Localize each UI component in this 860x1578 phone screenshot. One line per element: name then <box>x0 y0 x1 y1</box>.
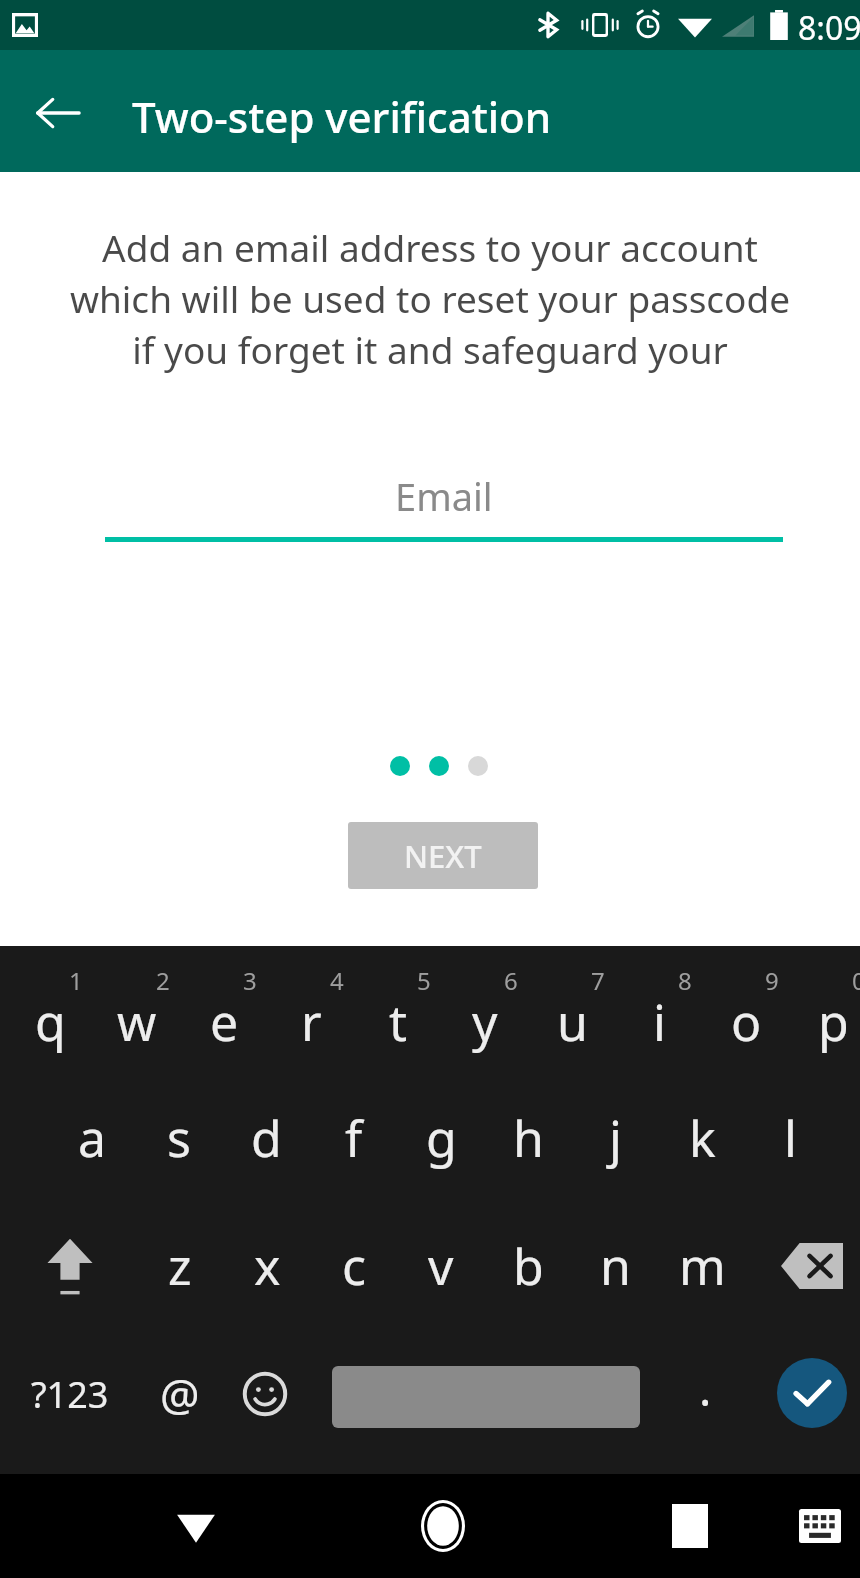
staticText: @ <box>160 1364 200 1424</box>
button[interactable]: NEXT <box>348 822 538 889</box>
button[interactable]: Backspace <box>764 1202 860 1330</box>
button[interactable]: j <box>572 1074 658 1202</box>
staticText: y <box>472 988 498 1056</box>
staticText: f <box>345 1104 363 1172</box>
staticText: q <box>35 988 66 1056</box>
button[interactable]: p <box>790 946 860 1074</box>
button[interactable]: k <box>659 1074 745 1202</box>
button[interactable]: Home <box>393 1490 493 1562</box>
staticText: 8 <box>678 964 692 997</box>
button[interactable]: i <box>616 946 702 1074</box>
button[interactable]: x <box>224 1202 310 1330</box>
button[interactable]: d <box>223 1074 309 1202</box>
button[interactable]: Back <box>22 82 102 144</box>
staticText: p <box>818 988 849 1056</box>
button[interactable]: g <box>398 1074 484 1202</box>
button[interactable]: Emoji <box>222 1330 308 1458</box>
staticText: h <box>513 1104 544 1172</box>
staticText: x <box>254 1232 281 1300</box>
staticText: 0 <box>852 964 860 997</box>
staticText: v <box>428 1232 454 1300</box>
staticText: d <box>251 1104 282 1172</box>
staticText: ?123 <box>31 1370 109 1419</box>
button[interactable]: l <box>747 1074 833 1202</box>
button[interactable]: w <box>94 946 180 1074</box>
button[interactable]: Recent apps <box>640 1490 740 1562</box>
staticText: a <box>78 1104 107 1172</box>
button[interactable]: y <box>442 946 528 1074</box>
staticText: Email <box>395 470 493 522</box>
staticText: u <box>557 988 588 1056</box>
staticText: b <box>513 1232 544 1300</box>
button[interactable]: . <box>662 1330 748 1458</box>
button[interactable]: Enter <box>777 1358 847 1428</box>
button[interactable]: Space <box>332 1366 640 1428</box>
button[interactable]: a <box>49 1074 135 1202</box>
button[interactable]: t <box>355 946 441 1074</box>
staticText: k <box>689 1104 716 1172</box>
button[interactable]: e <box>181 946 267 1074</box>
staticText: o <box>731 988 762 1056</box>
staticText: . <box>699 1357 712 1420</box>
staticText: n <box>600 1232 631 1300</box>
button[interactable]: Email <box>105 470 783 542</box>
button[interactable]: z <box>137 1202 223 1330</box>
staticText: s <box>167 1104 191 1172</box>
staticText: m <box>679 1232 726 1300</box>
button[interactable]: Shift <box>22 1202 118 1330</box>
staticText: 5 <box>417 964 431 997</box>
button[interactable]: n <box>572 1202 658 1330</box>
button[interactable]: o <box>703 946 789 1074</box>
staticText: z <box>168 1232 192 1300</box>
button[interactable]: Back <box>146 1490 246 1562</box>
button[interactable]: c <box>311 1202 397 1330</box>
staticText: t <box>389 988 408 1056</box>
button[interactable]: u <box>529 946 615 1074</box>
button[interactable]: Switch keyboard <box>788 1498 852 1554</box>
staticText: c <box>342 1232 366 1300</box>
button[interactable]: q <box>7 946 93 1074</box>
button[interactable]: r <box>268 946 354 1074</box>
staticText: NEXT <box>404 835 482 877</box>
staticText: 6 <box>504 964 518 997</box>
staticText: 2 <box>156 964 170 997</box>
button[interactable]: s <box>136 1074 222 1202</box>
button[interactable]: b <box>485 1202 571 1330</box>
staticText: e <box>210 988 239 1056</box>
button[interactable]: f <box>311 1074 397 1202</box>
button[interactable]: h <box>485 1074 571 1202</box>
staticText: Two-step verification <box>132 88 552 145</box>
staticText: w <box>117 988 157 1056</box>
staticText: j <box>609 1104 622 1172</box>
staticText: r <box>301 988 322 1056</box>
staticText: 3 <box>243 964 257 997</box>
staticText: 4 <box>330 964 344 997</box>
staticText: 8:09 <box>798 6 860 50</box>
staticText: i <box>653 988 666 1056</box>
button[interactable]: v <box>398 1202 484 1330</box>
button[interactable]: m <box>659 1202 745 1330</box>
staticText: Add an email address to your account whi… <box>56 222 804 382</box>
staticText: g <box>426 1104 457 1172</box>
staticText: l <box>784 1104 797 1172</box>
staticText: 7 <box>591 964 605 997</box>
staticText: 1 <box>69 964 83 997</box>
button[interactable]: @ <box>137 1330 223 1458</box>
staticText: 9 <box>765 964 779 997</box>
button[interactable]: ?123 <box>22 1330 118 1458</box>
